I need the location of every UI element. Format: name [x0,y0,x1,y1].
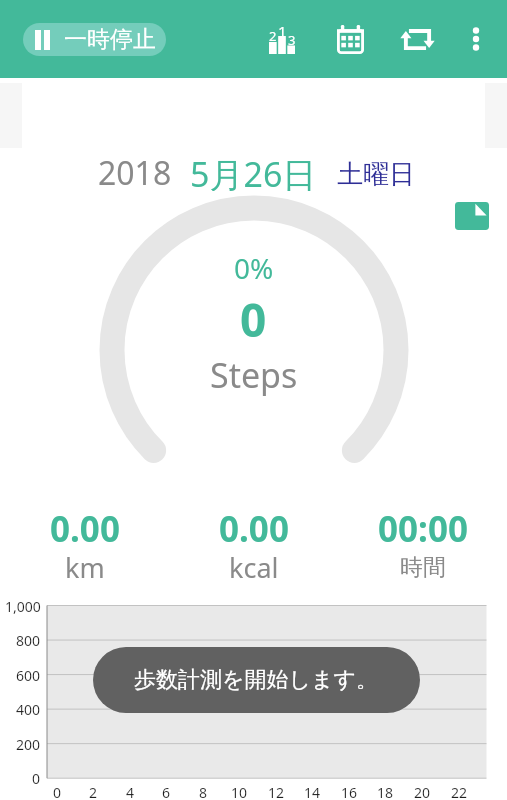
staticText: 6 [162,783,171,800]
staticText: 0 [53,783,62,800]
button[interactable]: Sync [393,15,441,63]
staticText: 12 [268,783,285,800]
staticText: 2 [269,27,277,45]
button[interactable]: 00:00 [338,505,507,582]
staticText: km [65,549,105,586]
staticText: 4 [126,783,135,800]
staticText: kcal [229,549,279,586]
staticText: 0 [32,769,41,788]
staticText: 土曜日 [337,158,415,191]
staticText: 00:00 [378,505,468,553]
staticText: 歩数計測を開始します。 [134,666,379,694]
staticText: 200 [16,735,41,754]
staticText: 22 [451,783,468,800]
staticText: 400 [16,700,41,719]
staticText: Steps [210,352,298,398]
staticText: 8 [199,783,208,800]
staticText: 1,000 [5,597,41,616]
button[interactable]: 0.00 [169,505,338,590]
button[interactable]: 0.00 [0,505,169,590]
button[interactable]: Ranking [258,15,306,63]
staticText: 5月26日 [190,151,317,191]
staticText: 10 [231,783,248,800]
staticText: 18 [377,783,394,800]
staticText: 時間 [400,553,446,582]
staticText: 2 [89,783,98,800]
staticText: 800 [16,631,41,650]
staticText: 0.00 [219,505,289,553]
button[interactable]: More options [452,15,500,63]
staticText: 600 [16,666,41,685]
staticText: 一時停止 [64,25,156,54]
staticText: 14 [304,783,321,800]
staticText: 1 [278,21,287,41]
staticText: 0.00 [50,505,120,553]
staticText: 0% [234,249,274,287]
button[interactable]: Memo [450,194,494,238]
button[interactable]: Calendar [326,15,374,63]
staticText: 0 [240,288,267,351]
button[interactable]: 一時停止 [23,23,166,56]
staticText: 3 [288,31,296,49]
staticText: 20 [414,783,431,800]
staticText: 16 [341,783,358,800]
staticText: 2018 [98,151,172,191]
